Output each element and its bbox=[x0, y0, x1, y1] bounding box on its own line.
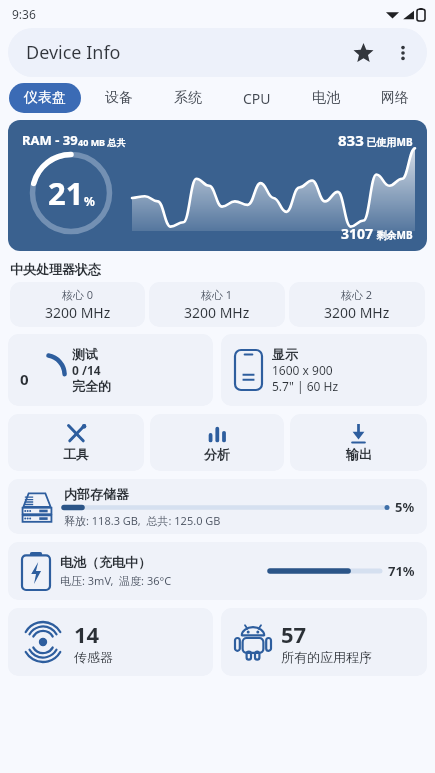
staticText: 剩余MB bbox=[374, 228, 413, 242]
staticText: 内部存储器 bbox=[64, 486, 129, 502]
button[interactable]: 输出 bbox=[290, 414, 427, 471]
button[interactable]: 电池 bbox=[294, 83, 357, 113]
button[interactable]: 57 bbox=[221, 608, 427, 676]
staticText: RAM - 39 bbox=[22, 131, 78, 149]
button[interactable]: 核心 1 bbox=[149, 282, 285, 327]
staticText: 网络 bbox=[381, 89, 409, 107]
button[interactable]: 14 bbox=[8, 608, 213, 676]
staticText: 工具 bbox=[63, 446, 89, 462]
button[interactable]: 内部存储器 bbox=[8, 479, 427, 534]
button[interactable]: CPU bbox=[225, 83, 288, 113]
staticText: 释放: 118.3 GB, 总共: 125.0 GB bbox=[64, 513, 221, 528]
staticText: 5.7" | 60 Hz bbox=[272, 378, 339, 394]
staticText: 所有的应用程序 bbox=[281, 649, 372, 665]
button[interactable]: 工具 bbox=[8, 414, 144, 471]
button[interactable]: Favorite bbox=[343, 33, 383, 73]
button[interactable]: 设备 bbox=[87, 83, 150, 113]
button[interactable]: 核心 0 bbox=[10, 282, 145, 327]
staticText: 5% bbox=[395, 498, 415, 516]
staticText: 核心 1 bbox=[201, 287, 233, 302]
staticText: 核心 2 bbox=[341, 287, 373, 302]
staticText: 0 bbox=[20, 369, 29, 389]
staticText: 分析 bbox=[204, 446, 230, 462]
staticText: 仪表盘 bbox=[24, 89, 66, 107]
staticText: 57 bbox=[281, 619, 307, 649]
button[interactable]: 核心 2 bbox=[289, 282, 425, 327]
staticText: 已使用MB bbox=[364, 135, 413, 149]
button[interactable]: 仪表盘 bbox=[9, 83, 81, 113]
button[interactable]: RAM - 39 bbox=[8, 120, 427, 251]
staticText: 传感器 bbox=[74, 649, 113, 665]
staticText: 833 bbox=[338, 130, 364, 150]
staticText: 测试 bbox=[72, 346, 98, 362]
staticText: 电池 bbox=[312, 89, 340, 107]
staticText: 21 bbox=[48, 172, 84, 214]
staticText: 电池（充电中） bbox=[60, 554, 151, 570]
button[interactable]: 系统 bbox=[156, 83, 219, 113]
staticText: 0 /14 bbox=[72, 362, 101, 378]
staticText: 电压: 3mV, 温度: 36°C bbox=[60, 573, 172, 588]
staticText: 完全的 bbox=[72, 378, 111, 394]
staticText: 设备 bbox=[105, 89, 133, 107]
staticText: 显示 bbox=[272, 346, 298, 362]
staticText: 1600 x 900 bbox=[272, 362, 333, 378]
staticText: Device Info bbox=[26, 40, 343, 65]
staticText: 3200 MHz bbox=[324, 303, 390, 322]
staticText: 3107 bbox=[341, 224, 374, 243]
staticText: 71% bbox=[388, 562, 415, 580]
staticText: % bbox=[84, 193, 95, 209]
staticText: 40 MB 总共 bbox=[78, 136, 126, 148]
button[interactable]: 显示 bbox=[221, 334, 427, 406]
staticText: 14 bbox=[74, 619, 100, 649]
staticText: 核心 0 bbox=[62, 287, 94, 302]
staticText: 中央处理器状态 bbox=[10, 261, 101, 277]
button[interactable]: More options bbox=[383, 33, 423, 73]
button[interactable]: 分析 bbox=[150, 414, 284, 471]
button[interactable]: 电池（充电中） bbox=[8, 542, 427, 600]
button[interactable]: 0 bbox=[8, 334, 213, 406]
staticText: 输出 bbox=[346, 446, 372, 462]
staticText: 9:36 bbox=[12, 6, 36, 22]
staticText: 3200 MHz bbox=[184, 303, 250, 322]
staticText: 系统 bbox=[174, 89, 202, 107]
staticText: CPU bbox=[243, 89, 271, 108]
button[interactable]: 网络 bbox=[363, 83, 426, 113]
staticText: 3200 MHz bbox=[45, 303, 111, 322]
